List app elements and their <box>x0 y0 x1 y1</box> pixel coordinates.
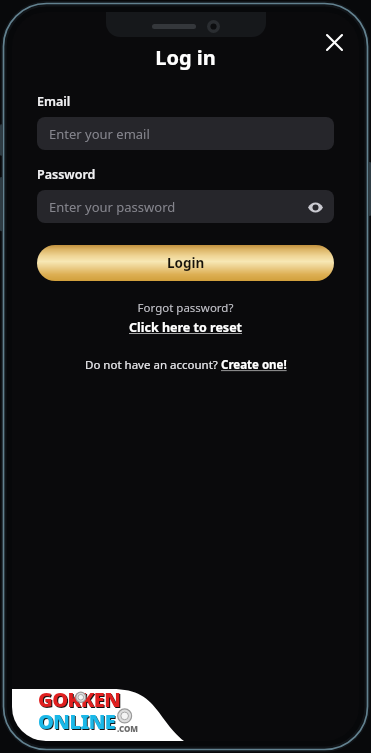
staticText: ONLINE <box>39 709 117 736</box>
button[interactable]: Click here to reset <box>129 319 243 336</box>
staticText: Click here to reset <box>129 319 243 336</box>
button[interactable]: Close <box>316 24 352 60</box>
staticText: Enter your email <box>49 125 150 143</box>
button[interactable]: Login <box>37 245 334 281</box>
staticText: GOKKEN <box>39 687 122 714</box>
staticText: Email <box>37 93 71 110</box>
staticText: Create one! <box>221 357 287 373</box>
staticText: Log in <box>155 44 216 71</box>
staticText: GOKKEN <box>38 686 121 713</box>
staticText: Forgot password? <box>37 300 334 316</box>
staticText: Password <box>37 166 96 183</box>
staticText: Do not have an account? <box>85 357 221 373</box>
button[interactable]: Enter your password <box>37 190 334 223</box>
staticText: ONLINE <box>38 708 116 735</box>
button[interactable]: Show password <box>304 196 326 218</box>
staticText: Enter your password <box>49 198 176 216</box>
button[interactable]: Enter your email <box>37 117 334 150</box>
staticText: .COM <box>117 723 139 734</box>
button[interactable]: Create one! <box>221 357 287 373</box>
staticText: Login <box>167 254 205 272</box>
